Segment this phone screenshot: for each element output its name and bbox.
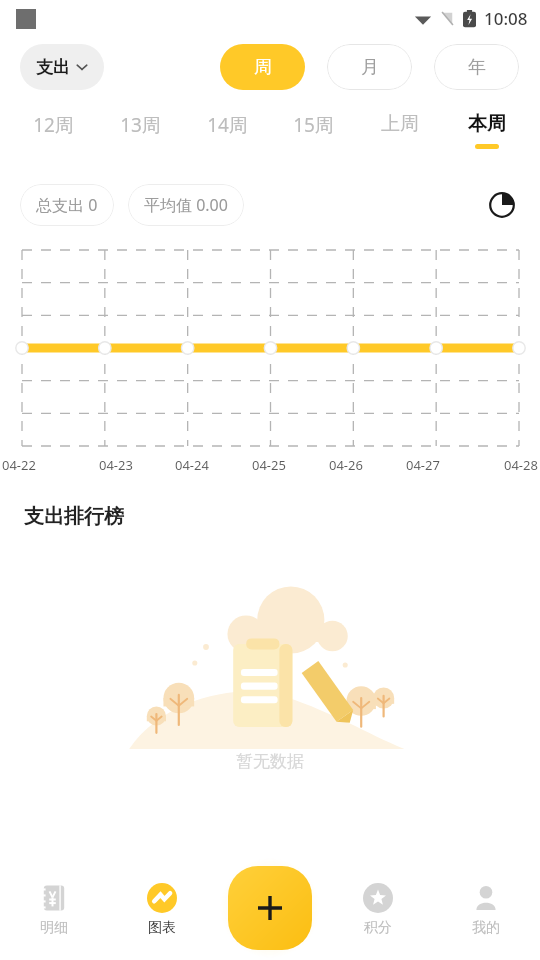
- staticText: 支出排行榜: [24, 504, 124, 529]
- button[interactable]: 总支出 0: [20, 184, 114, 226]
- staticText: 本周: [468, 112, 506, 136]
- button[interactable]: 月: [327, 44, 412, 90]
- staticText: 暂无数据: [236, 751, 304, 772]
- button[interactable]: 积分: [324, 860, 432, 960]
- staticText: 周: [254, 56, 272, 79]
- button[interactable]: 15周: [274, 112, 352, 146]
- staticText: 月: [361, 56, 379, 79]
- staticText: 13周: [120, 112, 161, 138]
- button[interactable]: Pie chart view: [484, 187, 520, 223]
- staticText: 04-27: [406, 456, 440, 474]
- staticText: 10:08: [484, 7, 528, 30]
- staticText: 我的: [472, 919, 500, 937]
- button[interactable]: 平均值 0.00: [128, 184, 244, 226]
- button[interactable]: 12周: [14, 112, 92, 146]
- staticText: 支出: [36, 57, 70, 78]
- staticText: 04-28: [504, 456, 538, 474]
- staticText: 04-25: [252, 456, 286, 474]
- staticText: 总支出 0: [36, 194, 98, 216]
- button[interactable]: 周: [220, 44, 305, 90]
- staticText: 04-22: [2, 456, 36, 474]
- button[interactable]: 年: [434, 44, 519, 90]
- staticText: 年: [468, 56, 486, 79]
- button[interactable]: 上周: [361, 112, 439, 144]
- button[interactable]: 我的: [432, 860, 540, 960]
- staticText: 14周: [207, 112, 248, 138]
- staticText: 04-26: [329, 456, 363, 474]
- button[interactable]: 明细: [0, 860, 108, 960]
- button[interactable]: 支出: [20, 44, 104, 90]
- staticText: 平均值 0.00: [144, 194, 228, 216]
- button[interactable]: 14周: [188, 112, 266, 146]
- staticText: 04-23: [99, 456, 133, 474]
- button[interactable]: 图表: [108, 860, 216, 960]
- button[interactable]: Add record: [228, 866, 312, 950]
- staticText: 04-24: [175, 456, 209, 474]
- button[interactable]: 13周: [101, 112, 179, 146]
- staticText: 明细: [40, 919, 68, 937]
- staticText: 图表: [148, 919, 176, 937]
- staticText: 15周: [293, 112, 334, 138]
- button[interactable]: 本周: [448, 112, 526, 149]
- staticText: 积分: [364, 919, 392, 937]
- staticText: 上周: [381, 112, 419, 136]
- staticText: 12周: [33, 112, 74, 138]
